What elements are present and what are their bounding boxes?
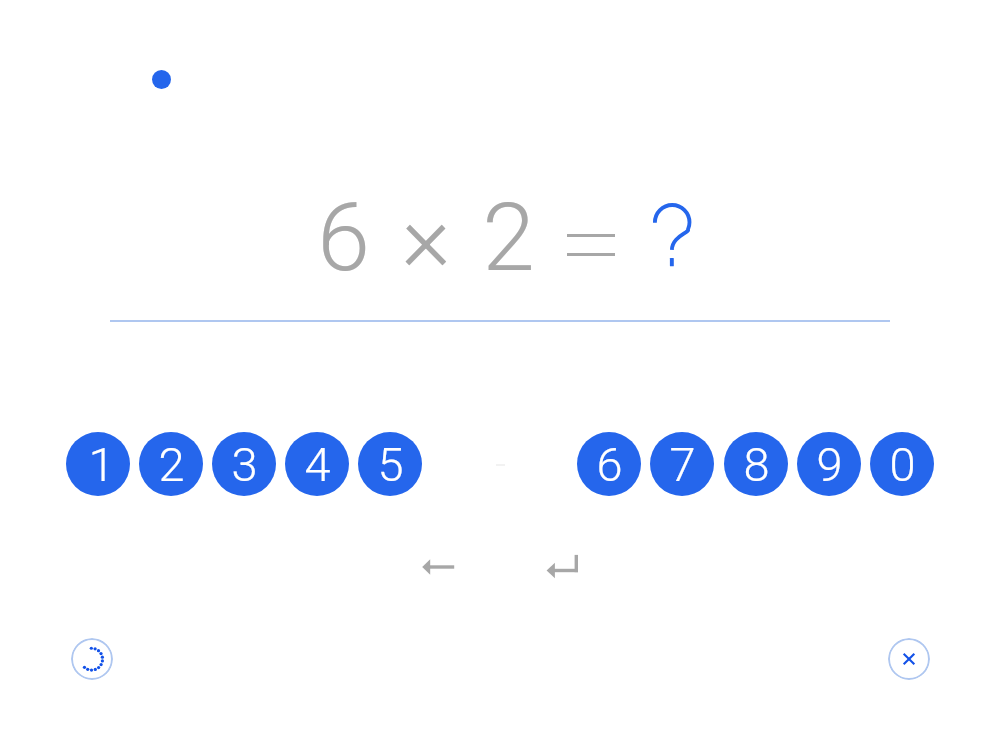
staticText: ×: [401, 182, 451, 292]
button[interactable]: 4: [285, 432, 349, 496]
button[interactable]: 1: [66, 432, 130, 496]
staticText: 9: [816, 437, 843, 492]
staticText: 7: [669, 437, 696, 492]
button[interactable]: 6: [577, 432, 641, 496]
staticText: 1: [88, 437, 115, 492]
staticText: 3: [231, 437, 258, 492]
button[interactable]: 5: [358, 432, 422, 496]
button[interactable]: 9: [797, 432, 861, 496]
button[interactable]: 0: [870, 432, 934, 496]
button[interactable]: 7: [650, 432, 714, 496]
staticText: 6: [596, 437, 623, 492]
button[interactable]: Enter: [538, 543, 586, 591]
staticText: 0: [889, 437, 916, 492]
button[interactable]: 2: [139, 432, 203, 496]
staticText: 4: [304, 437, 331, 492]
staticText: 6: [317, 182, 370, 292]
staticText: 8: [743, 437, 770, 492]
button[interactable]: 8: [724, 432, 788, 496]
button[interactable]: Backspace: [414, 543, 462, 591]
staticText: 2: [158, 437, 185, 492]
button[interactable]: Loading: [71, 638, 113, 680]
staticText: 5: [377, 437, 404, 492]
staticText: 2: [482, 182, 535, 292]
button[interactable]: Close: [888, 638, 930, 680]
button[interactable]: 3: [212, 432, 276, 496]
